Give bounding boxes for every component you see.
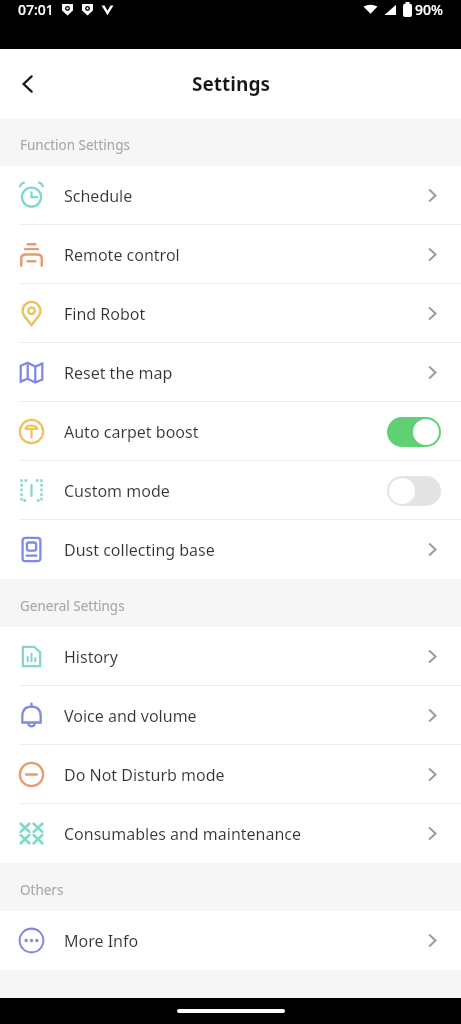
staticText: Find Robot: [64, 303, 146, 325]
staticText: Remote control: [64, 244, 180, 266]
staticText: Others: [20, 881, 64, 899]
staticText: Function Settings: [20, 136, 130, 154]
staticText: Consumables and maintenance: [64, 823, 302, 845]
button[interactable]: Consumables and maintenance: [0, 804, 461, 863]
staticText: Voice and volume: [64, 705, 197, 727]
button[interactable]: Auto carpet boost: [0, 402, 461, 461]
button[interactable]: Remote control: [0, 225, 461, 284]
button[interactable]: Do Not Disturb mode: [0, 745, 461, 804]
staticText: 90%: [415, 0, 443, 19]
button[interactable]: On: [387, 417, 441, 447]
staticText: Do Not Disturb mode: [64, 764, 225, 786]
button[interactable]: Dust collecting base: [0, 520, 461, 579]
button[interactable]: Back: [6, 62, 50, 106]
button[interactable]: Schedule: [0, 166, 461, 225]
button[interactable]: Off: [387, 476, 441, 506]
staticText: Settings: [192, 71, 270, 97]
button[interactable]: Find Robot: [0, 284, 461, 343]
staticText: 07:01: [18, 0, 54, 19]
staticText: Reset the map: [64, 362, 173, 384]
button[interactable]: Voice and volume: [0, 686, 461, 745]
button[interactable]: Reset the map: [0, 343, 461, 402]
staticText: General Settings: [20, 597, 125, 615]
button[interactable]: Custom mode: [0, 461, 461, 520]
button[interactable]: More Info: [0, 911, 461, 970]
staticText: Custom mode: [64, 480, 170, 502]
staticText: Auto carpet boost: [64, 421, 199, 443]
button[interactable]: History: [0, 627, 461, 686]
staticText: More Info: [64, 930, 139, 952]
staticText: History: [64, 646, 118, 668]
staticText: Schedule: [64, 185, 133, 207]
staticText: Dust collecting base: [64, 539, 215, 561]
